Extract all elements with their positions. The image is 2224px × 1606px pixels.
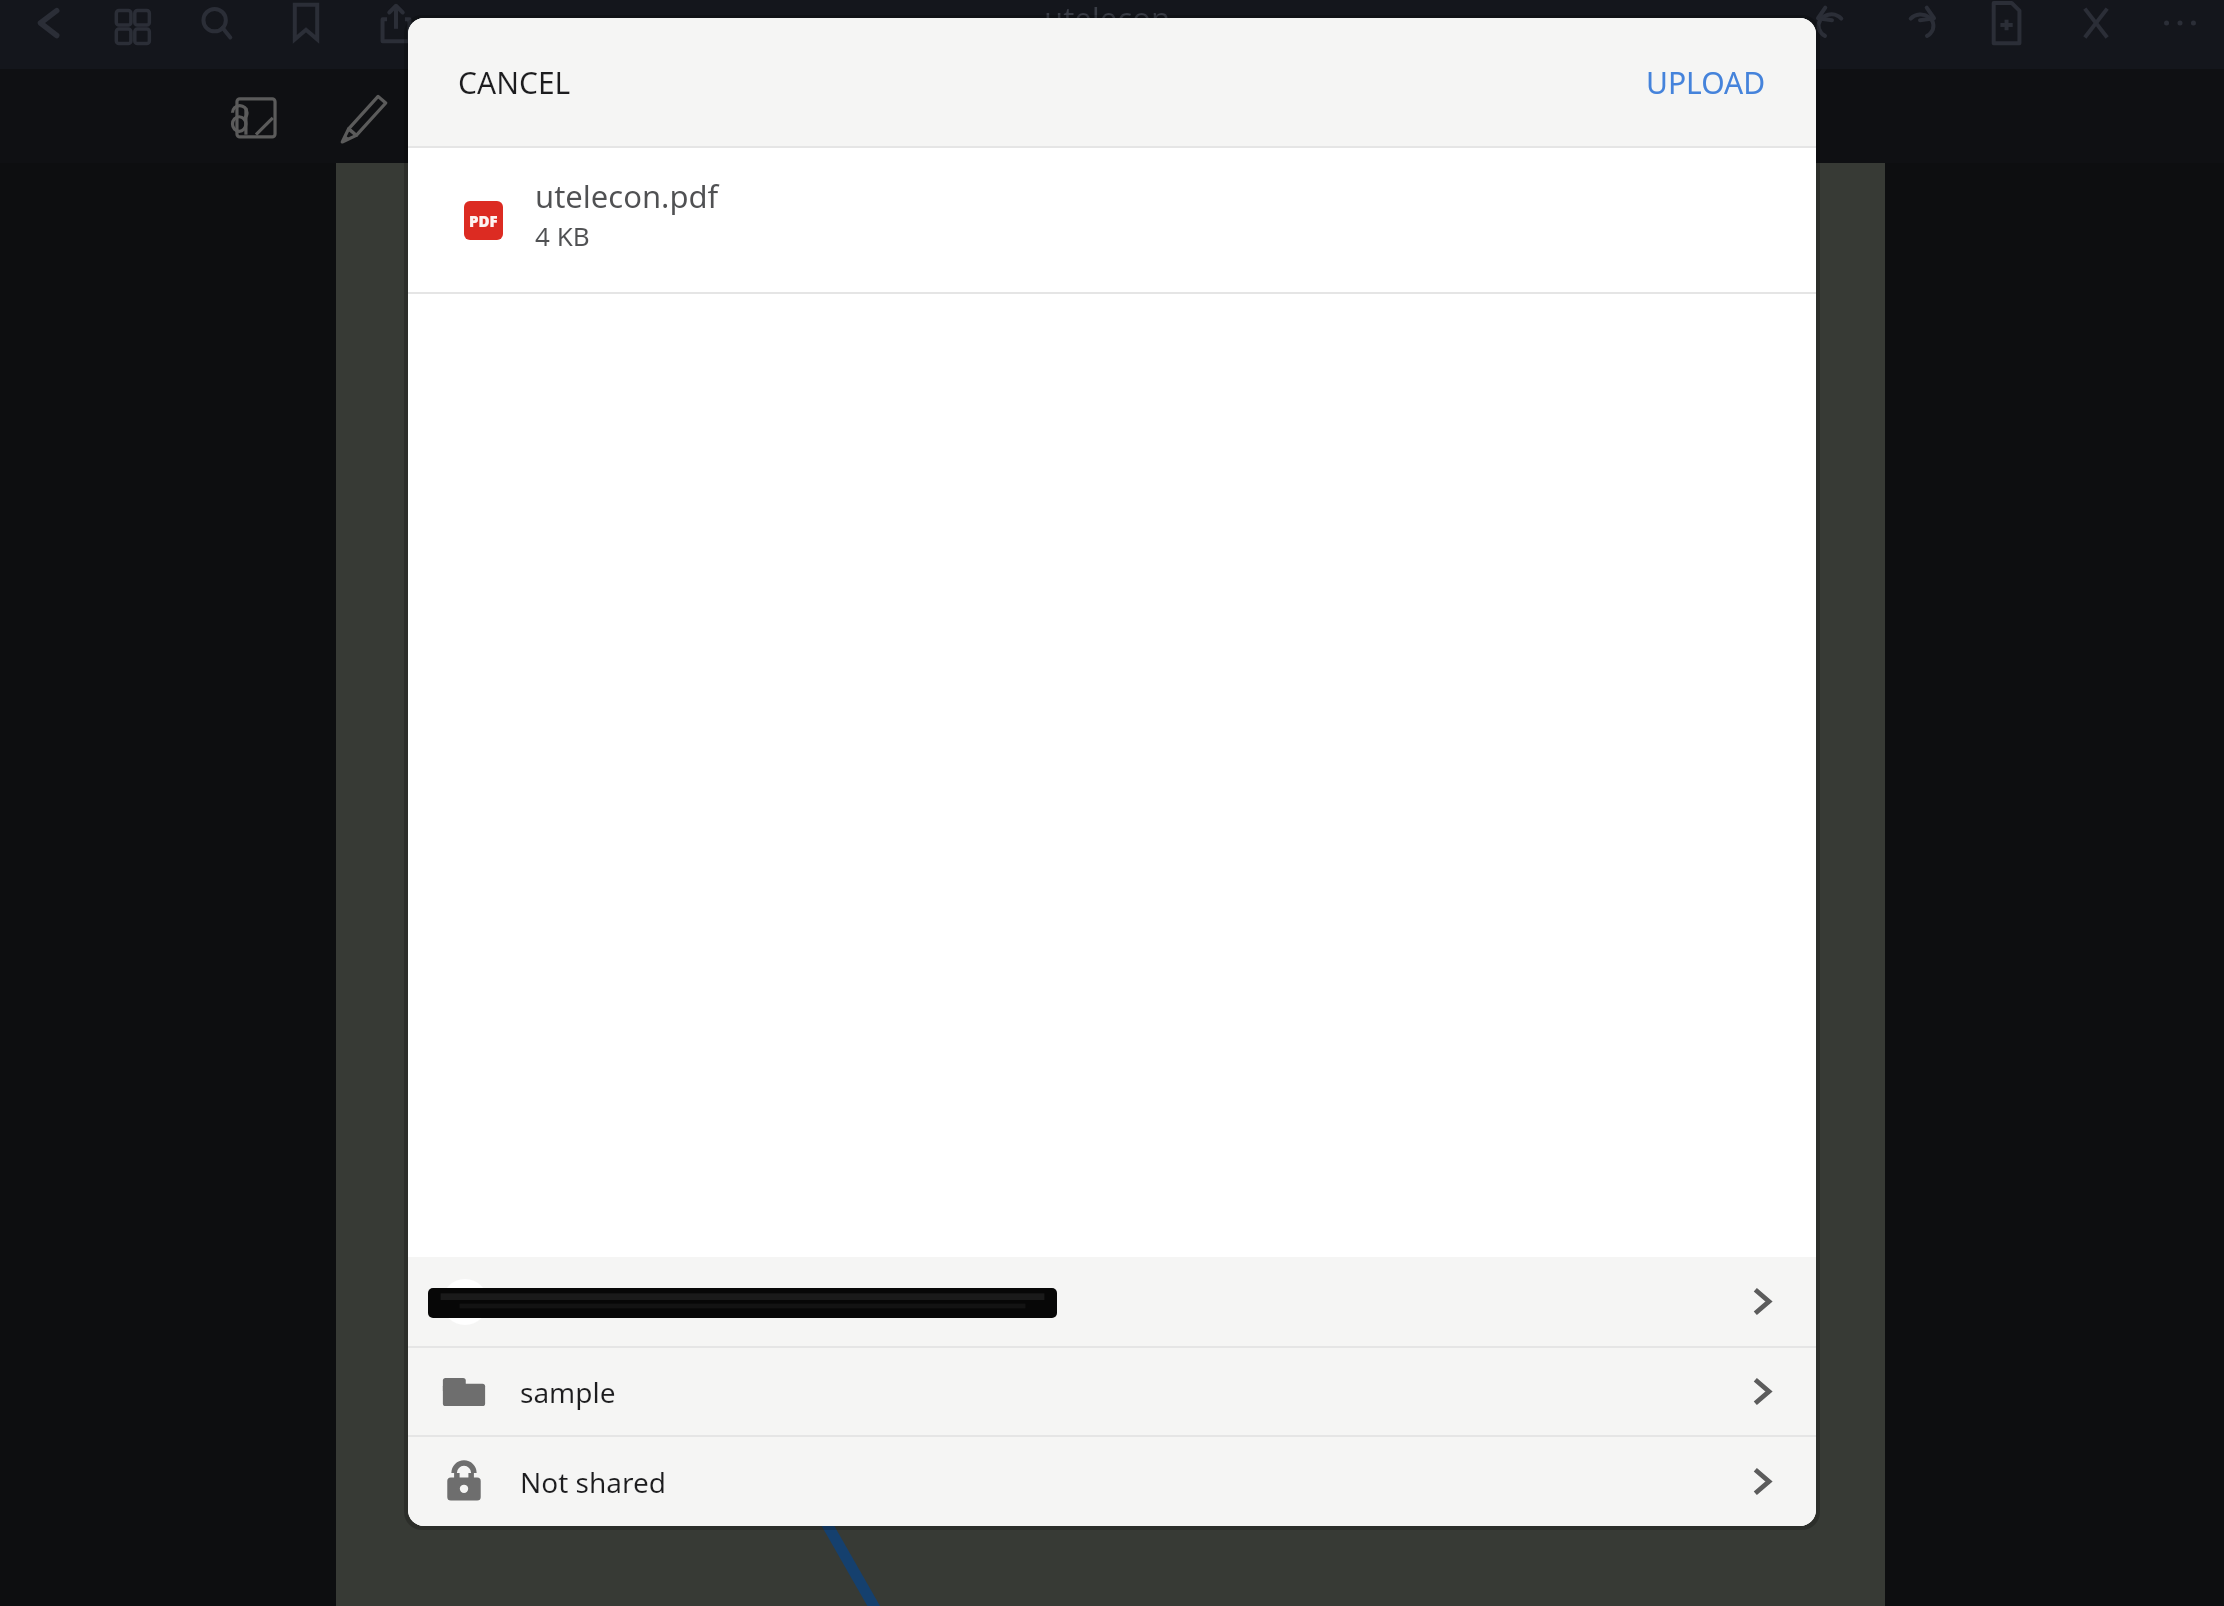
button[interactable]: PDF: [408, 148, 1816, 292]
button[interactable]: Account: [408, 1257, 1816, 1346]
button[interactable]: Search: [190, 0, 246, 48]
button[interactable]: Not shared: [408, 1437, 1816, 1526]
staticText: PDF: [469, 211, 498, 231]
button[interactable]: CANCEL: [430, 42, 599, 123]
button[interactable]: Share: [368, 0, 424, 48]
staticText: Not shared: [520, 1463, 667, 1501]
button[interactable]: New page: [1978, 0, 2034, 48]
button[interactable]: UPLOAD: [1618, 42, 1794, 123]
staticText: UPLOAD: [1646, 62, 1766, 103]
button[interactable]: Redo: [1892, 0, 1948, 48]
staticText: utelecon.pdf: [535, 175, 719, 217]
button[interactable]: Close: [2068, 0, 2124, 48]
staticText: sample: [520, 1373, 616, 1411]
button[interactable]: Thumbnails: [104, 0, 160, 48]
button[interactable]: More: [2152, 0, 2208, 48]
button[interactable]: Text tool: [228, 91, 284, 147]
button[interactable]: Undo: [1804, 0, 1860, 48]
button[interactable]: sample: [408, 1348, 1816, 1435]
button[interactable]: Bookmark: [278, 0, 334, 48]
staticText: CANCEL: [458, 62, 571, 103]
button[interactable]: Back: [22, 0, 78, 48]
button[interactable]: Pen: [332, 88, 396, 148]
staticText: utelecon: [1044, 0, 1171, 39]
staticText: 4 KB: [535, 218, 590, 253]
